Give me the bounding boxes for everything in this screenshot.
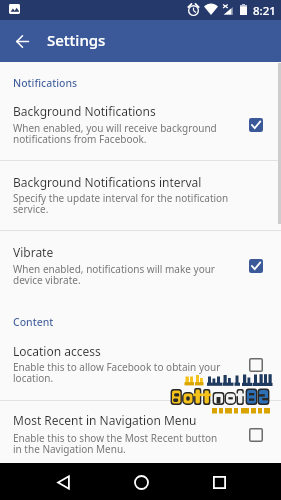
staticText: Specify the update interval for the noti…	[13, 191, 229, 205]
button[interactable]: Navigate up	[5, 24, 39, 58]
button[interactable]: Unchecked	[240, 419, 272, 451]
staticText: in the Navigation Menu.	[13, 442, 126, 456]
staticText: Enable this to allow Facebook to obtain …	[13, 360, 221, 374]
staticText: Settings	[47, 30, 106, 50]
staticText: Content	[13, 315, 54, 329]
button[interactable]	[0, 336, 281, 400]
staticText: Location access	[13, 343, 101, 359]
staticText: Vibrate	[13, 244, 54, 260]
staticText: Background Notifications	[13, 103, 156, 119]
staticText: Notifications	[13, 76, 78, 90]
button[interactable]: Recent apps	[199, 467, 239, 497]
staticText: 8:21	[253, 3, 276, 19]
staticText: Most Recent in Navigation Menu	[13, 412, 197, 428]
button[interactable]: Checked	[240, 250, 272, 282]
staticText: When enabled, you will receive backgroun…	[13, 121, 217, 135]
button[interactable]: Back	[43, 467, 83, 497]
button[interactable]	[0, 231, 281, 296]
button[interactable]: Home	[121, 467, 161, 497]
button[interactable]	[0, 96, 281, 160]
staticText: device vibrate.	[13, 273, 81, 287]
staticText: Enable this to show the Most Recent butt…	[13, 431, 218, 445]
staticText: location.	[13, 371, 54, 385]
button[interactable]: Checked	[240, 109, 272, 141]
staticText: Background Notifications interval	[13, 174, 202, 190]
button[interactable]: Unchecked	[240, 349, 272, 381]
staticText: When enabled, notifications will make yo…	[13, 262, 215, 276]
button[interactable]	[0, 161, 281, 230]
staticText: notifications from Facebook.	[13, 132, 147, 146]
button[interactable]	[0, 401, 281, 463]
staticText: service.	[13, 202, 49, 216]
